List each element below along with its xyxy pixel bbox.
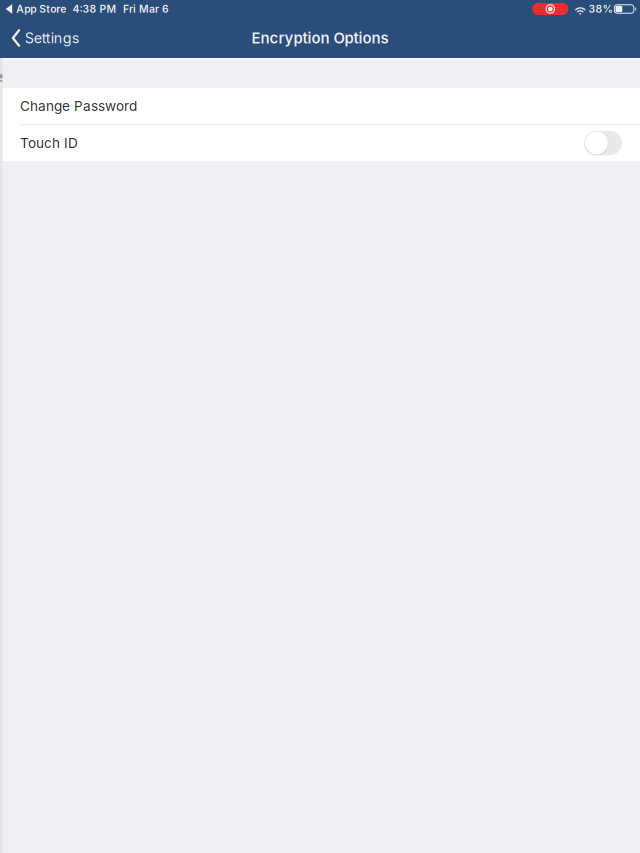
button[interactable]: Change Password — [0, 88, 640, 124]
staticText: App Store — [16, 3, 66, 15]
staticText: Fri Mar 6 — [123, 3, 169, 15]
staticText: Encryption Options — [251, 29, 388, 47]
staticText: 38% — [588, 3, 612, 15]
staticText: Settings — [25, 29, 80, 47]
staticText: Change Password — [20, 98, 137, 114]
staticText: 4:38 PM — [73, 3, 117, 15]
staticText: Touch ID — [20, 135, 78, 151]
button[interactable]: Touch ID — [0, 125, 640, 161]
button[interactable]: Settings — [0, 18, 89, 58]
